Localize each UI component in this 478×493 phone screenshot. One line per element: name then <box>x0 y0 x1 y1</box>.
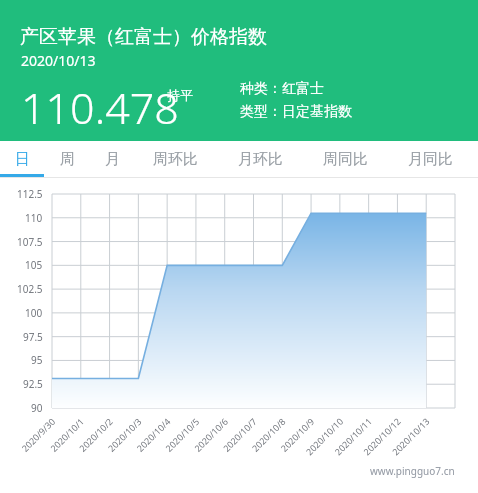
button[interactable]: 周同比 <box>312 141 378 177</box>
button[interactable]: 月同比 <box>397 141 463 177</box>
staticText: 月环比 <box>238 150 283 169</box>
staticText: 月 <box>105 150 120 169</box>
staticText: 2020/10/13 <box>21 51 96 70</box>
staticText: 月同比 <box>408 150 453 169</box>
button[interactable]: 周环比 <box>142 141 208 177</box>
staticText: 110.478 <box>21 78 179 137</box>
button[interactable]: 月环比 <box>227 141 293 177</box>
staticText: 日 <box>15 150 30 169</box>
staticText: 周环比 <box>153 150 198 169</box>
staticText: 产区苹果（红富士）价格指数 <box>20 25 267 49</box>
staticText: 类型：日定基指数 <box>240 103 352 121</box>
staticText: 持平 <box>167 87 193 103</box>
button[interactable]: 月 <box>92 141 132 177</box>
staticText: 种类：红富士 <box>240 80 324 98</box>
staticText: 周同比 <box>323 150 368 169</box>
button[interactable]: 日 <box>2 141 42 177</box>
button[interactable]: 周 <box>47 141 87 177</box>
staticText: 周 <box>60 150 75 169</box>
